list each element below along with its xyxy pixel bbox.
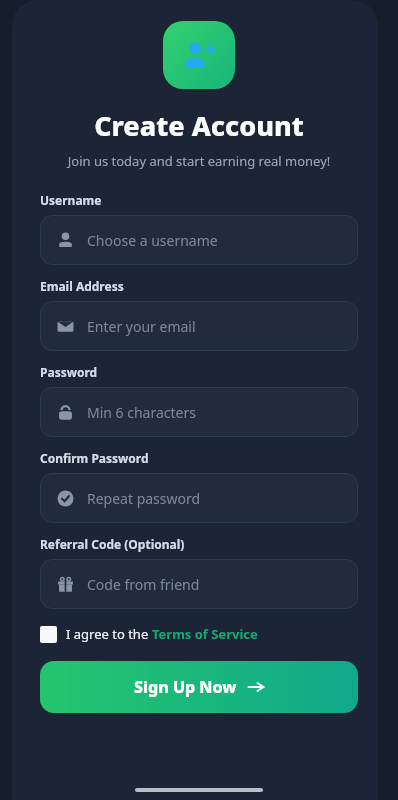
button[interactable]: Choose a username <box>40 215 358 265</box>
staticText: Min 6 characters <box>87 403 196 422</box>
staticText: Create Account <box>40 107 358 144</box>
staticText: Join us today and start earning real mon… <box>40 152 358 170</box>
button[interactable]: Repeat password <box>40 473 358 523</box>
staticText: Password <box>40 364 98 380</box>
staticText: Email Address <box>40 278 124 294</box>
button[interactable]: Min 6 characters <box>40 387 358 437</box>
staticText: Enter your email <box>87 317 196 336</box>
staticText: Repeat password <box>87 489 201 508</box>
staticText: Username <box>40 192 102 208</box>
button[interactable]: Code from friend <box>40 559 358 609</box>
staticText: Choose a username <box>87 231 218 250</box>
staticText: Terms of Service <box>152 625 258 643</box>
button[interactable]: Sign Up Now <box>40 661 358 713</box>
staticText: Code from friend <box>87 575 200 594</box>
staticText: Referral Code (Optional) <box>40 536 185 552</box>
staticText: Confirm Password <box>40 450 149 466</box>
button[interactable]: Terms of Service <box>152 625 258 643</box>
button[interactable]: Enter your email <box>40 301 358 351</box>
staticText: I agree to the <box>66 625 152 643</box>
button[interactable]: I agree to the <box>40 625 358 643</box>
staticText: Sign Up Now <box>134 676 237 698</box>
